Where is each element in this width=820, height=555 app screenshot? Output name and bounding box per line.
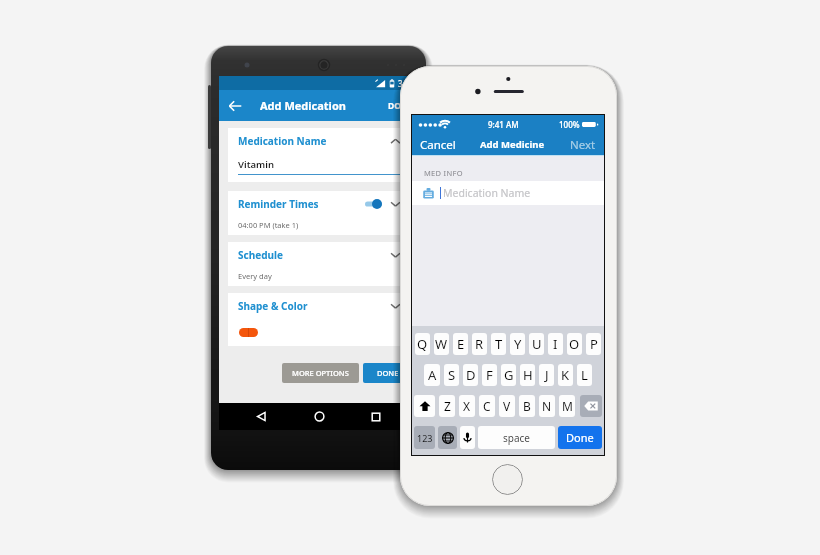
button[interactable]: J xyxy=(539,364,554,386)
button[interactable]: Dictate xyxy=(460,426,475,449)
staticText: Every day xyxy=(238,271,272,281)
button[interactable]: Switch keyboard xyxy=(438,426,457,449)
staticText: Add Medicine xyxy=(480,138,545,151)
button[interactable]: DONE xyxy=(363,363,413,383)
button[interactable]: H xyxy=(520,364,535,386)
staticText: K xyxy=(561,366,570,384)
button[interactable]: Reminder toggle xyxy=(365,199,382,209)
button[interactable]: P xyxy=(586,333,601,355)
button[interactable]: Shape & Color xyxy=(228,293,409,346)
button[interactable]: Cancel xyxy=(420,134,456,155)
button[interactable]: O xyxy=(567,333,582,355)
staticText: J xyxy=(545,366,549,384)
button[interactable]: A xyxy=(424,364,440,386)
button[interactable]: Expand section xyxy=(388,134,402,148)
button[interactable]: T xyxy=(491,333,506,355)
button[interactable]: MORE OPTIONS xyxy=(282,363,359,383)
button[interactable]: Home xyxy=(303,403,335,430)
staticText: Q xyxy=(417,335,428,353)
button[interactable]: Expand section xyxy=(388,197,402,211)
staticText: Z xyxy=(444,398,451,414)
button[interactable]: B xyxy=(519,395,535,417)
staticText: 3 xyxy=(398,78,403,89)
staticText: Cancel xyxy=(420,137,456,153)
staticText: P xyxy=(590,335,598,353)
staticText: L xyxy=(581,366,588,384)
button[interactable]: Schedule xyxy=(228,242,409,286)
staticText: 9:41 AM xyxy=(488,119,519,130)
button[interactable]: R xyxy=(472,333,487,355)
staticText: F xyxy=(486,366,493,384)
staticText: Medication Name xyxy=(443,186,531,200)
button[interactable]: Reminder Times xyxy=(228,191,409,235)
staticText: D xyxy=(466,366,476,384)
button[interactable]: W xyxy=(434,333,449,355)
staticText: Medication Name xyxy=(238,134,327,148)
button[interactable]: 123 xyxy=(414,426,435,449)
staticText: V xyxy=(503,398,511,414)
button[interactable]: X xyxy=(459,395,475,417)
staticText: N xyxy=(542,398,552,414)
staticText: DONE xyxy=(388,100,413,112)
staticText: R xyxy=(475,335,484,353)
button[interactable]: M xyxy=(559,395,575,417)
staticText: U xyxy=(532,335,542,353)
staticText: T xyxy=(495,335,503,353)
button[interactable]: Pill shape and colour xyxy=(239,328,258,337)
button[interactable]: Medication Name xyxy=(412,181,604,205)
button[interactable]: U xyxy=(529,333,544,355)
staticText: X xyxy=(463,398,471,414)
button[interactable]: G xyxy=(501,364,516,386)
button[interactable]: Home xyxy=(492,464,523,495)
staticText: O xyxy=(569,335,580,353)
button[interactable]: Back xyxy=(245,403,277,430)
staticText: E xyxy=(457,335,465,353)
staticText: MED INFO xyxy=(424,168,463,178)
staticText: H xyxy=(523,366,533,384)
button[interactable]: Q xyxy=(415,333,430,355)
button[interactable]: Done xyxy=(558,426,602,449)
staticText: G xyxy=(504,366,514,384)
button[interactable]: Next xyxy=(570,134,596,155)
staticText: 100% xyxy=(559,119,580,130)
staticText: space xyxy=(503,431,530,445)
staticText: B xyxy=(523,398,531,414)
button[interactable]: space xyxy=(478,426,555,449)
staticText: 04:00 PM (take 1) xyxy=(238,220,299,230)
staticText: DONE xyxy=(377,368,399,378)
button[interactable]: I xyxy=(548,333,563,355)
button[interactable]: Z xyxy=(439,395,455,417)
staticText: S xyxy=(448,366,456,384)
staticText: Y xyxy=(514,335,522,353)
button[interactable]: E xyxy=(453,333,468,355)
button[interactable]: Backspace xyxy=(580,395,602,417)
staticText: A xyxy=(428,366,437,384)
button[interactable]: Shift xyxy=(414,395,435,417)
staticText: M xyxy=(562,398,573,414)
staticText: Reminder Times xyxy=(238,197,319,211)
button[interactable]: D xyxy=(463,364,478,386)
staticText: MORE OPTIONS xyxy=(292,368,349,378)
staticText: Shape & Color xyxy=(238,299,308,313)
button[interactable]: C xyxy=(479,395,495,417)
button[interactable]: Expand section xyxy=(388,248,402,262)
staticText: Vitamin xyxy=(238,158,274,171)
button[interactable]: DONE xyxy=(382,90,418,121)
button[interactable]: Navigate up xyxy=(219,90,251,121)
button[interactable]: N xyxy=(539,395,555,417)
staticText: Schedule xyxy=(238,248,283,262)
button[interactable]: Y xyxy=(510,333,525,355)
button[interactable]: Recent apps xyxy=(360,403,392,430)
staticText: Next xyxy=(570,137,596,153)
button[interactable]: K xyxy=(558,364,573,386)
button[interactable]: Medication Name xyxy=(228,128,409,182)
button[interactable]: L xyxy=(577,364,592,386)
staticText: Done xyxy=(566,430,594,445)
button[interactable]: S xyxy=(444,364,459,386)
staticText: C xyxy=(483,398,491,414)
button[interactable]: F xyxy=(482,364,497,386)
button[interactable]: Expand section xyxy=(388,299,402,313)
staticText: I xyxy=(553,335,558,353)
button[interactable]: V xyxy=(499,395,515,417)
staticText: Add Medication xyxy=(260,98,346,113)
